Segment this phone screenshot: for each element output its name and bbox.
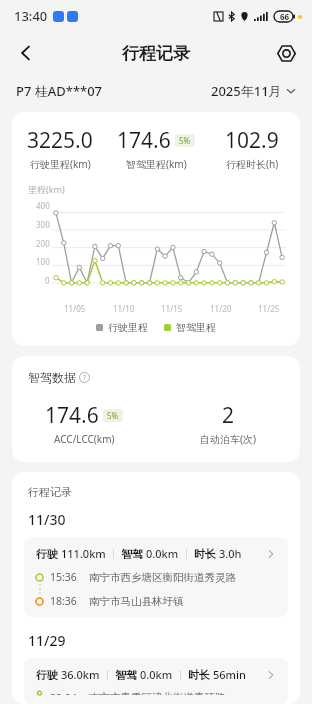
staticText: 111.0km xyxy=(61,546,106,561)
button[interactable]: Settings xyxy=(266,33,306,73)
staticText: 时长 xyxy=(188,667,213,682)
button[interactable]: Back xyxy=(6,33,46,73)
staticText: 56min xyxy=(213,667,246,682)
staticText: 11/20 xyxy=(210,303,232,314)
staticText: 15:36 xyxy=(50,570,77,584)
staticText: 13:40 xyxy=(14,7,48,25)
staticText: 11/15 xyxy=(161,303,183,314)
staticText: 行驶里程(km) xyxy=(30,157,91,171)
staticText: 36.0km xyxy=(61,667,100,682)
staticText: 行驶里程 xyxy=(108,321,148,334)
staticText: ? xyxy=(83,373,87,383)
staticText: 100 xyxy=(36,256,50,267)
button[interactable]: 2025年11月 xyxy=(211,82,296,100)
staticText: 66 xyxy=(280,11,290,22)
staticText: 400 xyxy=(36,200,50,211)
staticText: 18:36 xyxy=(50,594,77,608)
staticText: 0 xyxy=(45,275,50,286)
staticText: 南宁市马山县林圩镇 xyxy=(89,595,184,608)
staticText: 102.9 xyxy=(225,126,279,155)
staticText: 里程(km) xyxy=(28,183,65,195)
staticText: 11/10 xyxy=(113,303,135,314)
button[interactable]: 行驶 xyxy=(24,658,288,704)
staticText: 300 xyxy=(36,219,50,230)
staticText: 南宁市青秀区津北街道青环路 xyxy=(89,691,226,695)
staticText: 11/25 xyxy=(258,303,280,314)
staticText: 行驶 xyxy=(36,667,61,682)
staticText: 174.6 xyxy=(45,401,99,430)
staticText: 200 xyxy=(36,238,50,249)
staticText: 行程记录 xyxy=(28,485,72,499)
staticText: 5% xyxy=(179,135,191,146)
staticText: 智驾里程(km) xyxy=(126,157,187,171)
staticText: 11/29 xyxy=(28,631,66,650)
staticText: 智驾 xyxy=(115,667,140,682)
staticText: 23:04 xyxy=(50,691,77,695)
staticText: 智驾 xyxy=(121,546,146,561)
staticText: 0.0km xyxy=(146,546,179,561)
staticText: 11/30 xyxy=(28,510,66,529)
staticText: P7 桂AD***07 xyxy=(16,82,103,100)
staticText: 自动泊车(次) xyxy=(200,432,256,446)
staticText: 时长 xyxy=(194,546,219,561)
staticText: 行驶 xyxy=(36,546,61,561)
staticText: 行程记录 xyxy=(122,43,190,64)
staticText: 3.0h xyxy=(219,546,242,561)
staticText: 行程时长(h) xyxy=(226,157,279,171)
staticText: 2025年11月 xyxy=(211,82,282,100)
staticText: 5% xyxy=(107,410,119,421)
staticText: 174.6 xyxy=(117,126,171,155)
staticText: 智驾里程 xyxy=(176,321,216,334)
staticText: 3225.0 xyxy=(27,126,93,155)
staticText: 0.0km xyxy=(140,667,173,682)
button[interactable]: Info xyxy=(79,372,90,383)
staticText: 11/05 xyxy=(64,303,86,314)
staticText: 南宁市西乡塘区衡阳街道秀灵路 xyxy=(89,571,236,584)
button[interactable]: 行驶 xyxy=(24,537,288,617)
staticText: 智驾数据 xyxy=(28,370,76,385)
staticText: 2 xyxy=(222,401,235,430)
staticText: ACC/LCC(km) xyxy=(54,432,115,446)
